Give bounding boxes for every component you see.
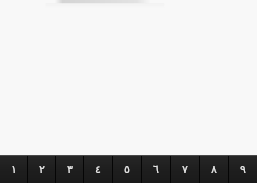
button[interactable]: ١ — [0, 156, 27, 183]
button[interactable]: ٣ — [56, 156, 83, 183]
button[interactable]: ٤ — [84, 156, 112, 183]
button[interactable]: ٢ — [28, 156, 55, 183]
button[interactable]: ٧ — [171, 156, 199, 183]
button[interactable]: ٨ — [200, 156, 228, 183]
button[interactable]: ٦ — [142, 156, 170, 183]
staticText: ٤ — [95, 163, 101, 176]
staticText: ٦ — [153, 163, 159, 176]
staticText: ٢ — [39, 163, 45, 176]
button[interactable]: ٥ — [113, 156, 141, 183]
staticText: ٧ — [182, 163, 188, 176]
staticText: ٥ — [124, 163, 130, 176]
button[interactable]: ٩ — [229, 156, 257, 183]
staticText: ٨ — [211, 163, 217, 176]
staticText: ٩ — [240, 163, 246, 176]
staticText: ٣ — [67, 163, 73, 176]
staticText: ١ — [11, 163, 17, 176]
